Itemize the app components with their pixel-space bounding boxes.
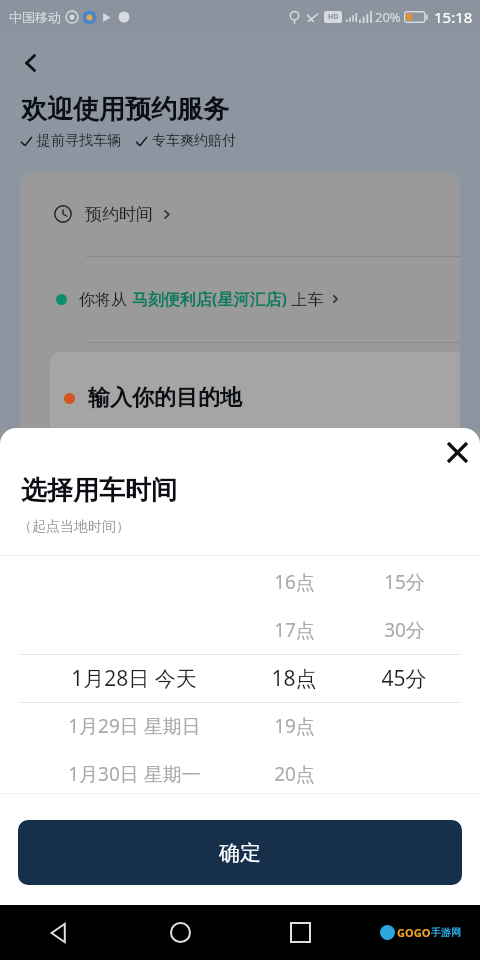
button[interactable]: 15分 (358, 558, 450, 606)
staticText: 20% (375, 8, 401, 26)
button[interactable]: Back (0, 905, 120, 960)
staticText: 欢迎使用预约服务 (21, 93, 229, 126)
staticText: 提前寻找车辆 (37, 132, 121, 150)
staticText: 30分 (384, 617, 425, 643)
button[interactable]: 你将从 (56, 256, 460, 342)
staticText: 中国移动 (9, 9, 61, 25)
staticText: 1月30日 星期一 (68, 761, 201, 787)
button[interactable]: 17点 (248, 606, 340, 654)
button[interactable]: Recents (240, 905, 360, 960)
button[interactable]: 18点 (248, 654, 340, 702)
staticText: 选择用车时间 (21, 474, 177, 507)
staticText: 20点 (274, 761, 315, 787)
button[interactable]: 1月30日 星期一 (18, 750, 250, 798)
staticText: 输入你的目的地 (88, 384, 242, 412)
staticText: 19点 (274, 713, 315, 739)
staticText: GOGO (397, 925, 431, 940)
staticText: 16点 (274, 569, 315, 595)
staticText: 18点 (271, 664, 317, 693)
button[interactable]: 1月28日 今天 (18, 654, 250, 702)
button[interactable]: Home (120, 905, 240, 960)
staticText: 15分 (384, 569, 425, 595)
staticText: 17点 (274, 617, 315, 643)
button[interactable]: 19点 (248, 702, 340, 750)
staticText: 马刻便利店(星河汇店) (132, 288, 287, 310)
button[interactable]: 预约时间 (54, 172, 460, 256)
staticText: （起点当地时间） (18, 518, 130, 536)
button[interactable]: 1月29日 星期日 (18, 702, 250, 750)
staticText: 上车 (287, 288, 324, 310)
staticText: 确定 (219, 840, 261, 866)
button[interactable]: 16点 (248, 558, 340, 606)
button[interactable]: 确定 (18, 820, 462, 885)
button[interactable]: Back (8, 40, 54, 86)
staticText: 1月29日 星期日 (68, 713, 201, 739)
staticText: 手游网 (431, 926, 461, 939)
button[interactable]: 20点 (248, 750, 340, 798)
staticText: HD (328, 12, 339, 22)
button[interactable]: 输入你的目的地 (50, 352, 460, 444)
staticText: 预约时间 (85, 204, 153, 225)
staticText: 你将从 (79, 288, 132, 310)
staticText: 专车爽约赔付 (152, 132, 236, 150)
staticText: 1月28日 今天 (71, 664, 197, 693)
button[interactable]: Close (434, 429, 480, 475)
button[interactable]: 45分 (358, 654, 450, 702)
staticText: 45分 (381, 664, 427, 693)
button[interactable]: 30分 (358, 606, 450, 654)
staticText: 15:18 (434, 7, 473, 27)
